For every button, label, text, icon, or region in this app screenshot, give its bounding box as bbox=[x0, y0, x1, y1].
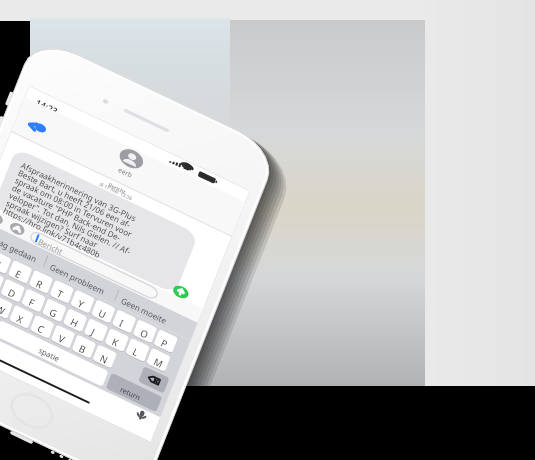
button[interactable]: Message input field bbox=[232, 178, 332, 210]
button[interactable]: Camera bbox=[175, 215, 211, 245]
button[interactable]: Back to conversations bbox=[55, 112, 91, 142]
button[interactable]: App store bbox=[198, 202, 232, 232]
button[interactable]: Home button bbox=[390, 310, 460, 360]
